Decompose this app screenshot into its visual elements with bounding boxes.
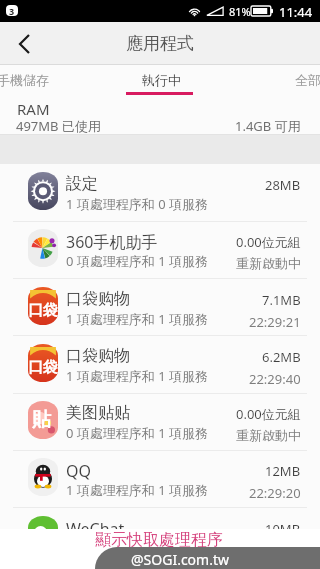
staticText: RAM <box>17 99 50 119</box>
staticText: 0.00位元組 <box>236 233 301 251</box>
staticText: 12MB <box>265 462 301 480</box>
staticText: 設定 <box>66 174 98 194</box>
button[interactable]: 設定 <box>0 164 320 221</box>
staticText: 10MB <box>265 520 301 529</box>
staticText: 7.1MB <box>262 291 301 309</box>
button[interactable]: 手機儲存 <box>0 65 92 95</box>
staticText: 81% <box>229 4 251 19</box>
staticText: 應用程式 <box>126 33 194 54</box>
staticText: 1 項處理程序和 1 項服務 <box>66 481 209 499</box>
staticText: 28MB <box>265 176 301 194</box>
staticText: 3 <box>9 5 15 16</box>
staticText: 0.00位元組 <box>236 405 301 423</box>
staticText: 1.4GB 可用 <box>235 117 301 135</box>
staticText: 360手机助手 <box>66 231 158 253</box>
staticText: 口袋购物 <box>66 289 130 309</box>
staticText: 口袋 <box>28 358 58 377</box>
button[interactable]: 口袋 <box>0 279 320 336</box>
button[interactable]: WeChat <box>0 508 320 529</box>
button[interactable]: QQ <box>0 450 320 507</box>
staticText: WeChat <box>66 518 125 529</box>
staticText: 執行中 <box>142 72 181 88</box>
staticText: 6.2MB <box>262 348 301 366</box>
staticText: 22:29:21 <box>249 313 301 331</box>
staticText: 1 項處理程序和 1 項服務 <box>66 367 209 385</box>
button[interactable]: 全部 <box>239 65 320 95</box>
staticText: 手機儲存 <box>0 72 49 88</box>
staticText: 顯示快取處理程序 <box>95 530 223 550</box>
staticText: 0 項處理程序和 1 項服務 <box>66 424 209 442</box>
button[interactable]: 執行中 <box>92 65 230 95</box>
button[interactable]: 貼 <box>0 393 320 450</box>
button[interactable]: Back <box>3 22 45 65</box>
staticText: 22:29:20 <box>249 484 301 502</box>
staticText: QQ <box>66 460 91 482</box>
staticText: 497MB 已使用 <box>16 117 101 135</box>
staticText: 美图贴贴 <box>66 403 130 423</box>
staticText: 貼 <box>32 408 51 432</box>
staticText: 0 項處理程序和 1 項服務 <box>66 252 209 270</box>
button[interactable]: 360手机助手 <box>0 221 320 278</box>
staticText: 1 項處理程序和 0 項服務 <box>66 195 209 213</box>
button[interactable]: 口袋 <box>0 336 320 393</box>
staticText: 重新啟動中 <box>236 255 301 271</box>
staticText: 口袋 <box>28 301 58 320</box>
staticText: 重新啟動中 <box>236 427 301 443</box>
staticText: 口袋购物 <box>66 346 130 366</box>
staticText: 1 項處理程序和 1 項服務 <box>66 310 209 328</box>
staticText: 全部 <box>295 72 320 88</box>
staticText: 11:44 <box>279 3 313 21</box>
staticText: 22:29:40 <box>249 370 301 388</box>
staticText: @SOGI.com.tw <box>131 550 229 569</box>
